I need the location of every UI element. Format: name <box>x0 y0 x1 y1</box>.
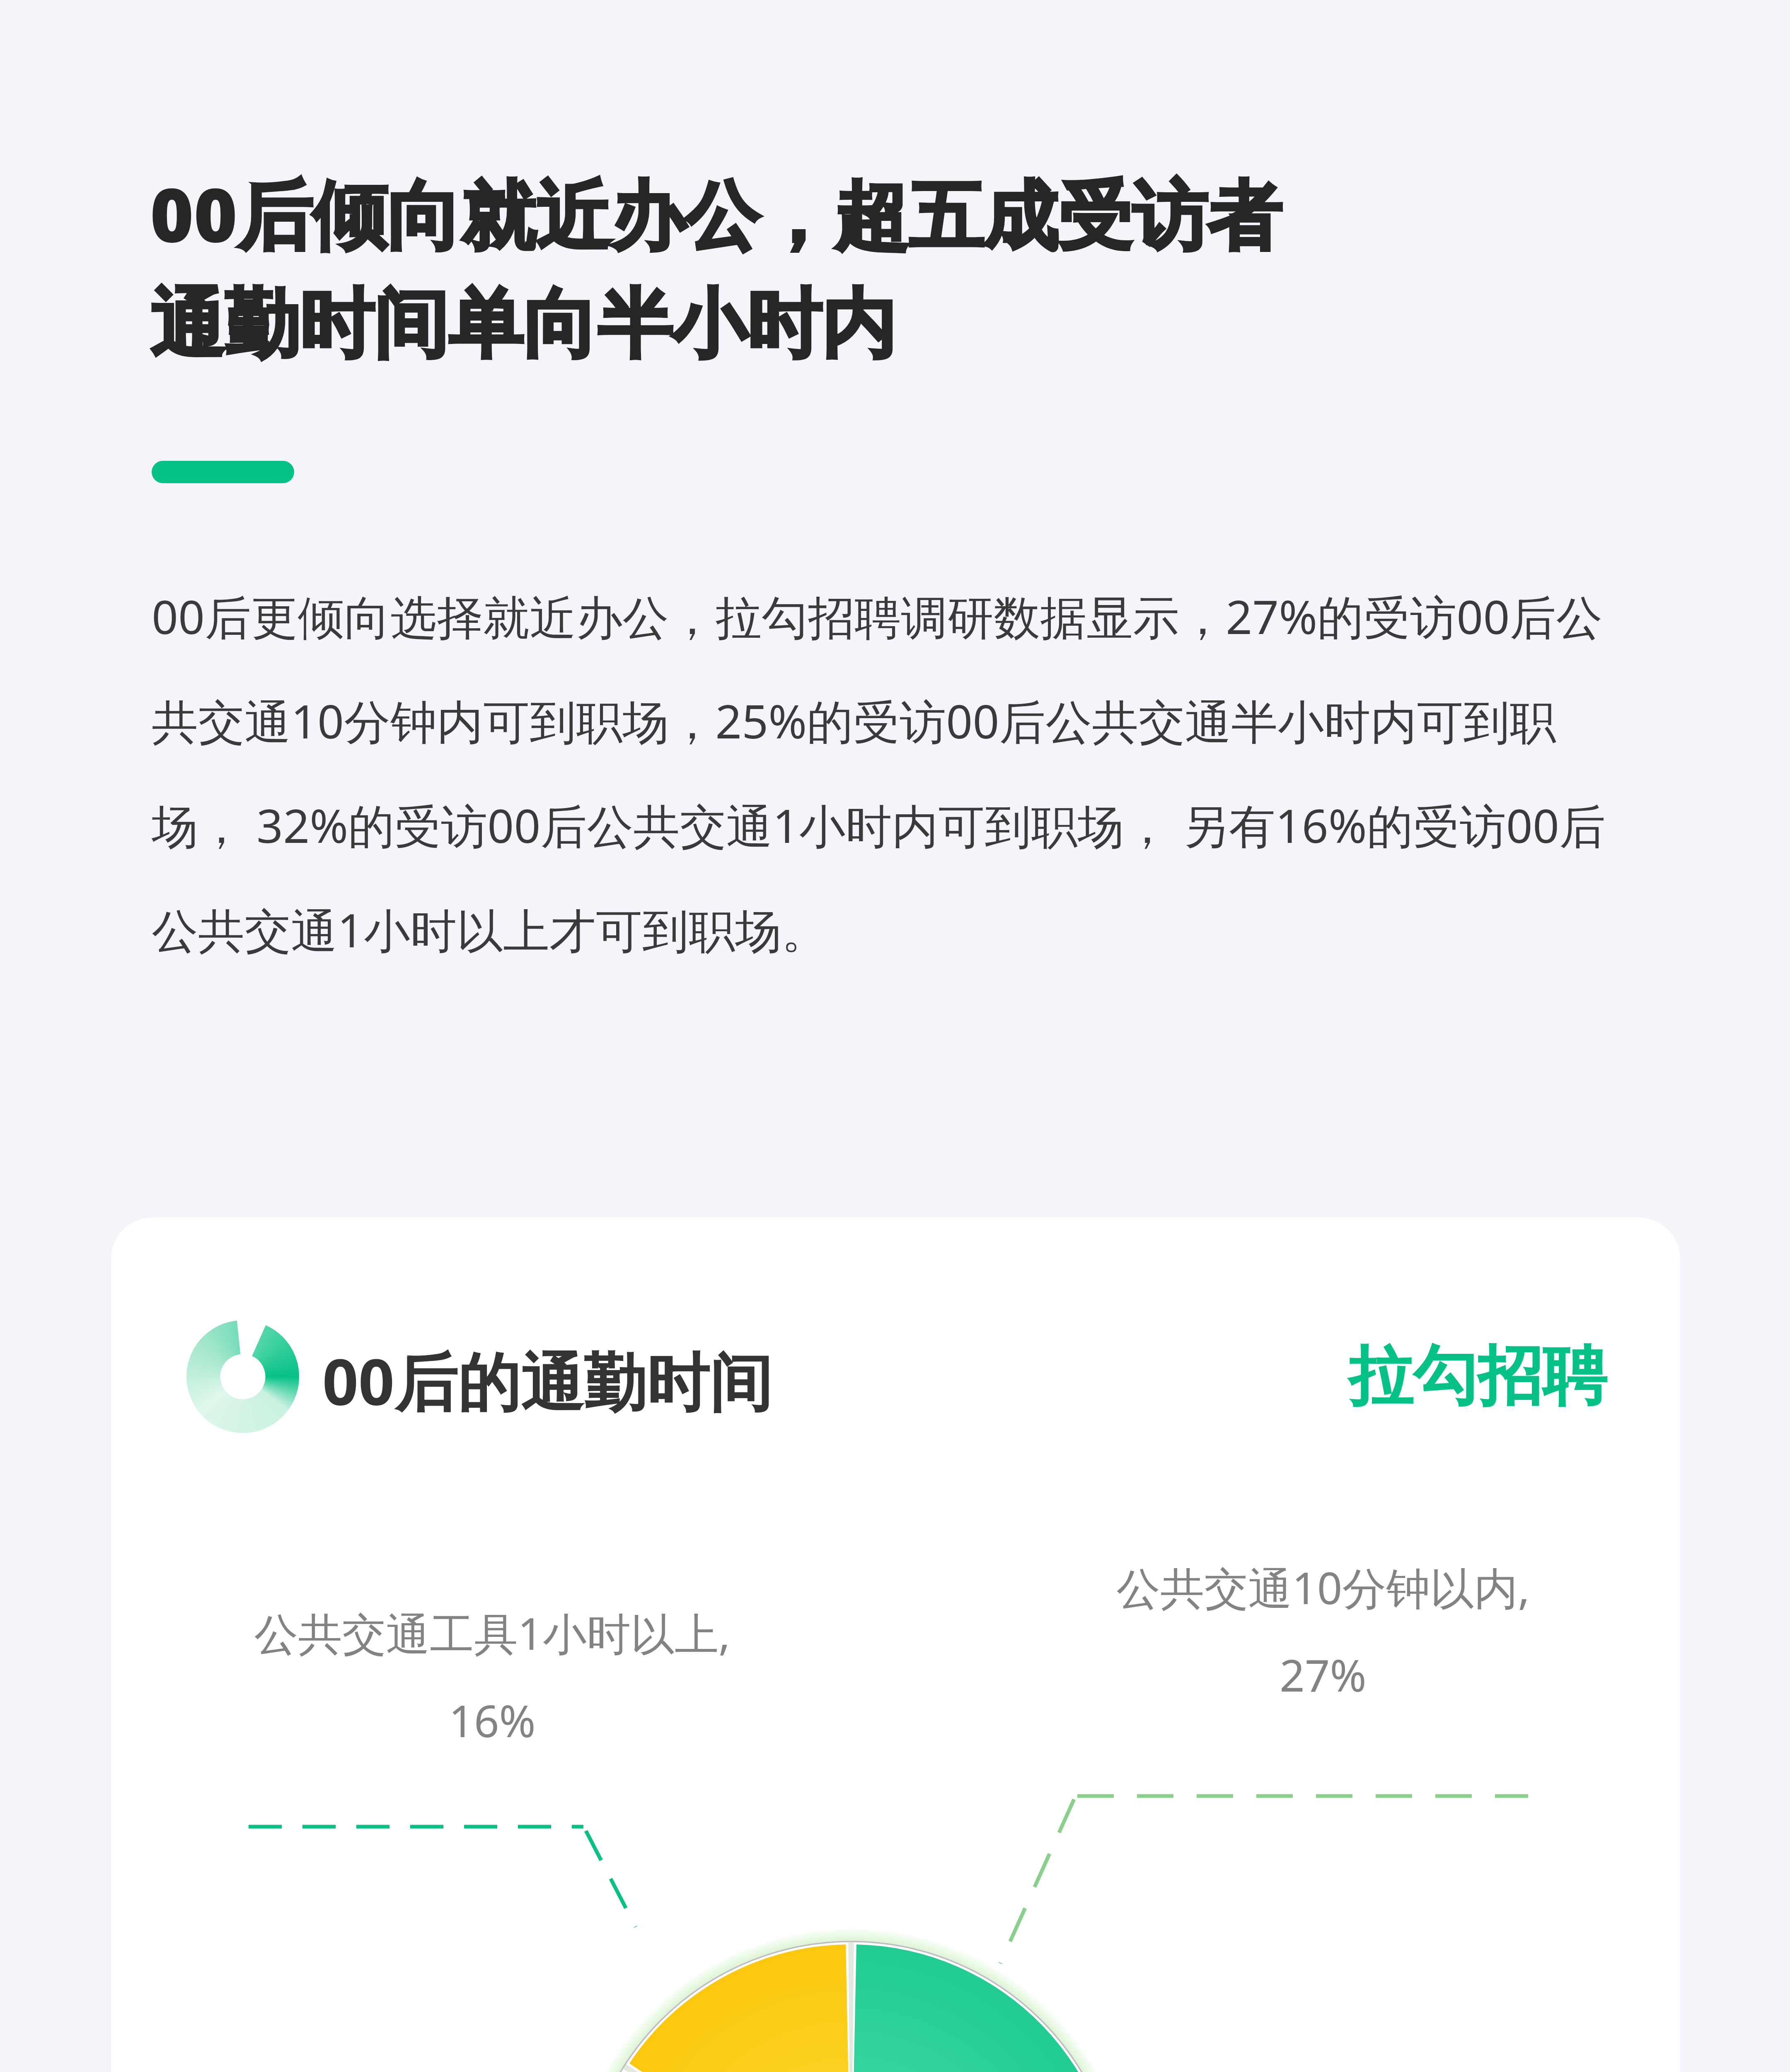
staticText: 公共交通10分钟以内, <box>1116 1557 1530 1617</box>
staticText: 00后更倾向选择就近办公，拉勾招聘调研数据显示，27%的受访00后公共交通10分… <box>152 584 1643 961</box>
other: Lagou logo <box>186 1320 299 1433</box>
staticText: 16% <box>449 1690 536 1750</box>
button[interactable]: Lagou logo <box>111 1218 1680 2072</box>
staticText: 00后倾向就近办公，超五成受访者 通勤时间单向半小时内 <box>150 162 1658 372</box>
staticText: 拉勾招聘 <box>1267 1336 1607 1418</box>
staticText: 00后的通勤时间 <box>322 1338 772 1424</box>
staticText: 27% <box>1280 1645 1367 1704</box>
staticText: 公共交通工具1小时以上, <box>254 1603 731 1663</box>
